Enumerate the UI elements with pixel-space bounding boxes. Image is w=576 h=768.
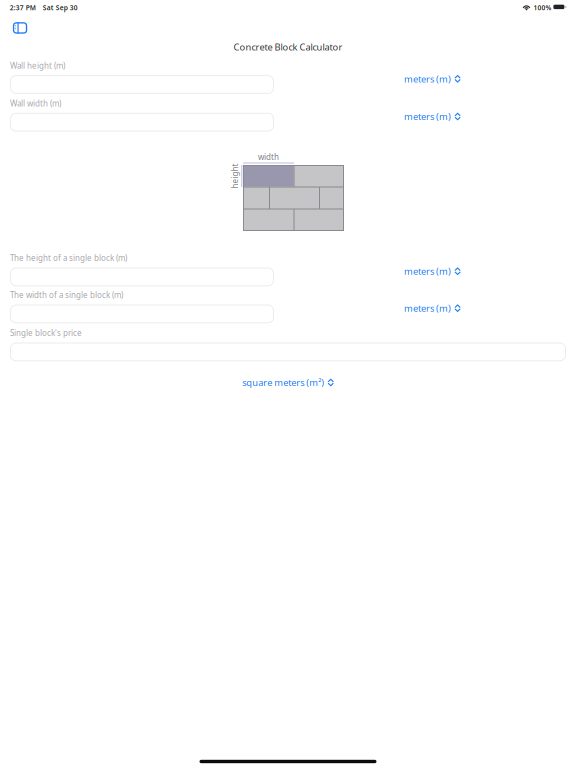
button[interactable]: meters (m)	[404, 110, 461, 123]
button[interactable]	[10, 304, 274, 323]
button[interactable]: Toggle Sidebar	[9, 18, 31, 38]
staticText: width	[258, 152, 279, 162]
staticText: meters (m)	[404, 302, 451, 314]
button[interactable]	[10, 113, 274, 132]
staticText: 2:37 PM	[10, 3, 36, 12]
staticText: Single block's price	[10, 328, 82, 338]
staticText: meters (m)	[404, 265, 451, 277]
button[interactable]: square meters (m²)	[242, 376, 334, 389]
button[interactable]	[10, 267, 274, 286]
button[interactable]: meters (m)	[404, 302, 461, 314]
staticText: meters (m)	[404, 73, 451, 85]
staticText: height	[222, 171, 247, 181]
staticText: meters (m)	[404, 110, 451, 123]
staticText: The height of a single block (m)	[10, 253, 127, 263]
button[interactable]: meters (m)	[404, 265, 461, 277]
button[interactable]	[10, 342, 566, 361]
staticText: Sat Sep 30	[43, 3, 78, 12]
staticText: 100%	[533, 3, 551, 12]
staticText: The width of a single block (m)	[10, 290, 123, 300]
staticText: Concrete Block Calculator	[233, 41, 342, 53]
button[interactable]	[10, 75, 274, 94]
staticText: square meters (m²)	[242, 376, 324, 389]
staticText: Wall height (m)	[10, 60, 65, 71]
staticText: Wall width (m)	[10, 98, 61, 109]
button[interactable]: meters (m)	[404, 73, 461, 85]
